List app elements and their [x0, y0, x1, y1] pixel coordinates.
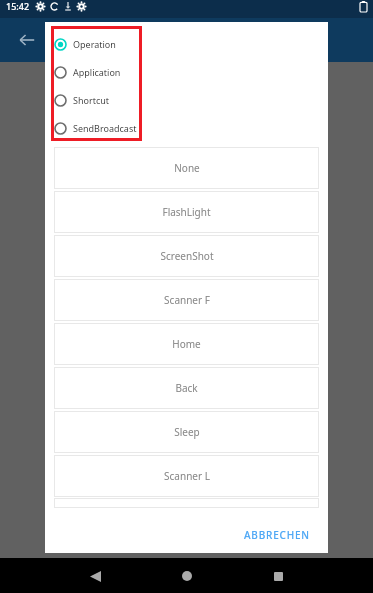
button[interactable]: FlashLight	[54, 191, 319, 233]
button[interactable]: Operation	[54, 30, 152, 58]
staticText: KEYCODE_BUTTON_F(306)	[243, 74, 365, 88]
staticText: ScreenShot	[160, 249, 214, 263]
staticText: FlashLight	[162, 205, 211, 219]
staticText: Shortcut	[73, 94, 110, 106]
staticText: Sleep	[174, 425, 200, 439]
button[interactable]: Recents	[263, 561, 293, 591]
button[interactable]: Add	[313, 494, 359, 540]
staticText: Scanner L	[164, 469, 210, 483]
staticText: ABBRECHEN	[244, 528, 310, 542]
staticText: Home	[172, 337, 201, 351]
staticText: keycode	[8, 74, 47, 88]
button[interactable]: ABBRECHEN	[238, 523, 316, 547]
button[interactable]: Back	[54, 367, 319, 409]
staticText: SingleClick	[8, 146, 63, 160]
staticText: SendBroadcast	[73, 122, 137, 134]
staticText: 15:42	[6, 0, 30, 12]
staticText: Application	[73, 66, 121, 78]
button[interactable]: Scanner L	[54, 455, 319, 497]
button[interactable]: Back	[80, 561, 110, 591]
staticText: None	[174, 161, 200, 175]
staticText: SingleClick	[8, 180, 63, 194]
button[interactable]: Back	[10, 23, 44, 57]
staticText: DoubleClick	[8, 214, 68, 228]
button[interactable]: Application	[54, 58, 152, 86]
button[interactable]: SendBroadcast	[54, 114, 152, 142]
button[interactable]: None	[54, 147, 319, 189]
button[interactable]: Shortcut	[54, 86, 152, 114]
button[interactable]: ScreenShot	[54, 235, 319, 277]
button[interactable]: Home	[54, 323, 319, 365]
staticText: Operation	[73, 38, 116, 50]
staticText: Scanner F	[164, 293, 210, 307]
button[interactable]: Scanner F	[54, 279, 319, 321]
button[interactable]: Home	[172, 561, 202, 591]
staticText: Back	[175, 381, 198, 395]
staticText: LongClick	[8, 248, 57, 262]
button[interactable]: Sleep	[54, 411, 319, 453]
